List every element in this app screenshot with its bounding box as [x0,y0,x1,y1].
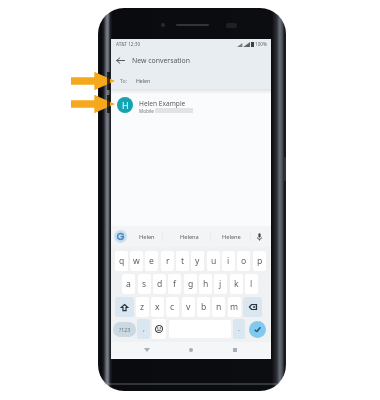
button[interactable]: f [168,274,181,294]
button[interactable]: Back [111,49,130,71]
staticText: d [157,278,163,290]
button[interactable]: i [222,251,235,271]
button[interactable]: Google [114,230,127,243]
button[interactable]: Backspace [243,297,262,317]
button[interactable]: o [237,251,250,271]
staticText: g [188,278,194,290]
staticText: n [216,301,222,313]
button[interactable]: t [176,251,189,271]
button[interactable]: w [130,251,143,271]
staticText: e [149,255,154,267]
staticText: H [122,99,129,111]
button[interactable]: h [199,274,212,294]
staticText: . [238,324,240,334]
button[interactable]: v [182,297,195,317]
staticText: v [186,301,191,313]
button[interactable]: q [115,251,128,271]
button[interactable]: Send [249,321,266,338]
staticText: i [227,255,230,267]
staticText: New conversation [132,56,191,65]
button[interactable]: To: [111,71,271,90]
staticText: s [142,278,147,290]
button[interactable]: x [151,297,164,317]
button[interactable]: a [122,274,135,294]
staticText: r [166,255,170,267]
button[interactable]: p [253,251,266,271]
staticText: z [140,301,145,313]
staticText: w [133,255,140,267]
button[interactable]: z [136,297,149,317]
button[interactable]: Emoji [152,319,166,339]
staticText: o [241,255,247,267]
button[interactable]: j [214,274,227,294]
staticText: l [250,278,253,290]
button[interactable]: , [137,319,150,339]
staticText: u [211,255,217,267]
staticText: f [173,278,176,290]
button[interactable]: y [191,251,204,271]
button[interactable]: u [207,251,220,271]
staticText: AT&T 12:30 [116,41,141,47]
button[interactable]: H [111,93,271,118]
button[interactable]: e [145,251,158,271]
button[interactable]: r [161,251,174,271]
staticText: 100% [255,41,267,47]
button[interactable]: Helen [139,233,155,241]
button[interactable]: Shift [115,297,134,317]
staticText: k [234,278,239,290]
staticText: Mobile [139,108,154,114]
button[interactable]: d [153,274,166,294]
staticText: Helen Example [139,99,186,108]
button[interactable]: c [166,297,179,317]
staticText: To: [120,77,128,84]
button[interactable]: . [233,319,245,339]
button[interactable]: s [138,274,151,294]
button[interactable]: Back [139,342,155,358]
button[interactable]: b [197,297,210,317]
staticText: y [195,255,200,267]
staticText: , [143,324,145,334]
staticText: c [170,301,175,313]
staticText: Helen [136,77,151,84]
button[interactable]: Symbols [113,319,136,339]
button[interactable]: l [245,274,258,294]
button[interactable]: m [228,297,241,317]
staticText: x [155,301,160,313]
staticText: b [201,301,207,313]
staticText: j [219,278,222,290]
button[interactable]: Voice input [255,232,263,242]
button[interactable]: Helena [180,233,199,241]
button[interactable]: g [184,274,197,294]
button[interactable]: Home [183,342,199,358]
staticText: m [230,301,239,313]
button[interactable]: Helene [222,233,241,241]
staticText: ?123 [119,326,131,333]
button[interactable]: Recent apps [227,342,243,358]
staticText: h [203,278,209,290]
staticText: p [257,255,263,267]
staticText: a [126,278,131,290]
button[interactable]: k [230,274,243,294]
staticText: q [119,255,125,267]
button[interactable]: n [212,297,225,317]
staticText: t [181,255,185,267]
